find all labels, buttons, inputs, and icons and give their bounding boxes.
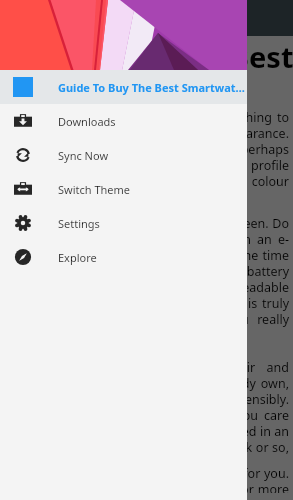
staticText: will know whether it is the right watch … xyxy=(14,465,289,493)
staticText: Explore xyxy=(58,250,97,265)
staticText: When buying a smartwatch, the first thin… xyxy=(14,109,289,206)
button[interactable]: Sync Now xyxy=(0,138,247,172)
staticText: Guide To Buy The Best xyxy=(0,37,293,76)
button[interactable]: Settings xyxy=(0,206,247,240)
staticText: Sync Now xyxy=(58,148,109,163)
staticText: Settings xyxy=(58,216,100,231)
staticText: Switch Theme xyxy=(58,182,131,197)
button[interactable]: Explore xyxy=(0,240,247,274)
staticText: Smartwatch xyxy=(0,76,151,115)
button[interactable]: Downloads xyxy=(0,104,247,138)
staticText: The next thing to think about is the scr… xyxy=(14,215,289,344)
button[interactable]: Guide To Buy The Best Smartwat… xyxy=(0,70,247,104)
button[interactable]: Switch Theme xyxy=(0,172,247,206)
staticText: Downloads xyxy=(58,114,116,129)
staticText: Guide To Buy The Best Smartwat… xyxy=(58,80,245,95)
staticText: Pick a model that is able to pair and sy… xyxy=(14,359,289,472)
